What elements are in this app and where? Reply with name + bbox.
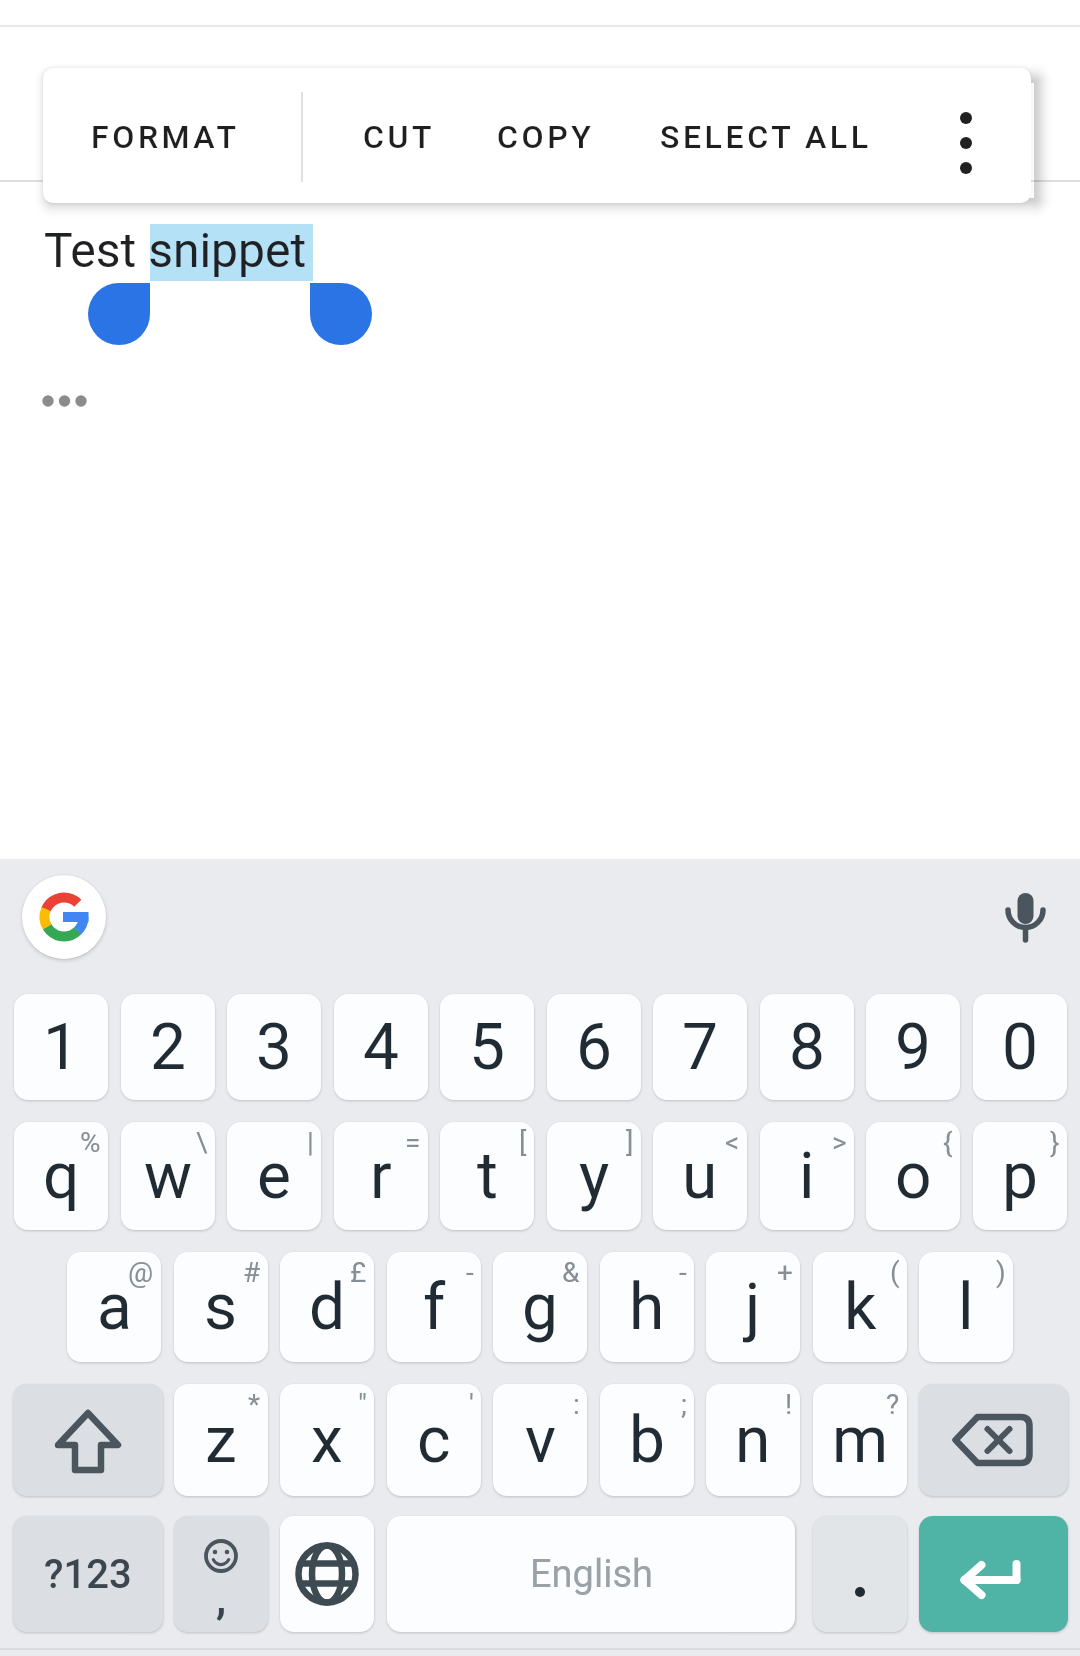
button[interactable]: SELECT ALL xyxy=(641,87,891,187)
button[interactable]: o xyxy=(866,1122,960,1230)
button[interactable]: w xyxy=(121,1122,215,1230)
button[interactable] xyxy=(280,1516,374,1632)
staticText: £ xyxy=(350,1256,367,1289)
button[interactable]: r xyxy=(334,1122,428,1230)
button[interactable]: , xyxy=(174,1516,268,1632)
button[interactable]: m xyxy=(813,1384,907,1496)
staticText: 6 xyxy=(576,1010,612,1085)
button[interactable] xyxy=(13,1384,163,1496)
button[interactable]: ?123 xyxy=(13,1516,163,1632)
staticText: English xyxy=(530,1552,653,1597)
button[interactable]: x xyxy=(280,1384,374,1496)
button[interactable] xyxy=(22,875,106,959)
button[interactable]: CUT xyxy=(339,87,459,187)
button[interactable]: f xyxy=(387,1252,481,1362)
staticText: SELECT ALL xyxy=(660,118,872,156)
staticText: 5 xyxy=(469,1010,505,1085)
button[interactable]: 6 xyxy=(547,994,641,1100)
button[interactable]: u xyxy=(653,1122,747,1230)
staticText: , xyxy=(216,1570,227,1624)
staticText: ) xyxy=(996,1256,1006,1289)
staticText: ( xyxy=(890,1256,900,1289)
staticText: h xyxy=(629,1270,665,1345)
button[interactable]: v xyxy=(493,1384,587,1496)
staticText: @ xyxy=(128,1256,154,1289)
staticText: FORMAT xyxy=(91,118,240,156)
staticText: = xyxy=(405,1126,421,1159)
button[interactable]: q xyxy=(14,1122,108,1230)
staticText: ] xyxy=(626,1126,634,1159)
staticText: > xyxy=(832,1126,847,1159)
staticText: n xyxy=(735,1403,771,1478)
staticText: < xyxy=(725,1126,740,1159)
button[interactable] xyxy=(88,283,150,345)
staticText: y xyxy=(579,1139,610,1214)
button[interactable]: 1 xyxy=(14,994,108,1100)
staticText: d xyxy=(309,1270,346,1345)
staticText: ! xyxy=(785,1388,793,1421)
staticText: k xyxy=(844,1270,877,1345)
button[interactable] xyxy=(919,1516,1068,1632)
button[interactable]: z xyxy=(174,1384,268,1496)
staticText: 2 xyxy=(150,1010,186,1085)
button[interactable]: 3 xyxy=(227,994,321,1100)
button[interactable] xyxy=(919,1384,1068,1496)
staticText: CUT xyxy=(363,118,436,156)
staticText: 8 xyxy=(789,1010,825,1085)
staticText: c xyxy=(417,1403,451,1478)
staticText: q xyxy=(43,1139,80,1214)
button[interactable] xyxy=(990,880,1062,952)
staticText: & xyxy=(562,1256,580,1289)
button[interactable]: 4 xyxy=(334,994,428,1100)
staticText: s xyxy=(204,1270,238,1345)
staticText: - xyxy=(466,1256,474,1289)
staticText: " xyxy=(358,1388,367,1421)
staticText: a xyxy=(97,1270,132,1345)
staticText: } xyxy=(1050,1126,1060,1159)
button[interactable]: 8 xyxy=(760,994,854,1100)
staticText: r xyxy=(370,1139,392,1214)
button[interactable] xyxy=(310,283,372,345)
staticText: ' xyxy=(469,1388,474,1421)
button[interactable]: t xyxy=(440,1122,534,1230)
button[interactable]: 7 xyxy=(653,994,747,1100)
staticText: \ xyxy=(196,1126,208,1159)
staticText: ? xyxy=(886,1388,900,1421)
staticText: [ xyxy=(519,1126,527,1159)
button[interactable]: i xyxy=(760,1122,854,1230)
staticText: j xyxy=(745,1270,761,1345)
staticText: 1 xyxy=(43,1010,79,1085)
staticText: - xyxy=(679,1256,687,1289)
staticText: % xyxy=(80,1126,101,1159)
button[interactable]: s xyxy=(174,1252,268,1362)
button[interactable] xyxy=(813,1516,907,1632)
button[interactable]: j xyxy=(706,1252,800,1362)
button[interactable]: n xyxy=(706,1384,800,1496)
staticText: l xyxy=(958,1270,974,1345)
button[interactable]: FORMAT xyxy=(65,87,265,187)
button[interactable]: c xyxy=(387,1384,481,1496)
button[interactable]: e xyxy=(227,1122,321,1230)
button[interactable]: English xyxy=(387,1516,795,1632)
button[interactable]: b xyxy=(600,1384,694,1496)
button[interactable]: y xyxy=(547,1122,641,1230)
button[interactable]: k xyxy=(813,1252,907,1362)
staticText: : xyxy=(573,1388,580,1421)
button[interactable]: h xyxy=(600,1252,694,1362)
button[interactable]: d xyxy=(280,1252,374,1362)
staticText: # xyxy=(243,1256,261,1289)
button[interactable]: a xyxy=(67,1252,161,1362)
staticText: { xyxy=(943,1126,953,1159)
button[interactable] xyxy=(926,92,1006,192)
staticText: t xyxy=(477,1139,498,1214)
button[interactable]: p xyxy=(973,1122,1067,1230)
button[interactable]: 9 xyxy=(866,994,960,1100)
button[interactable]: 0 xyxy=(973,994,1067,1100)
staticText: 4 xyxy=(363,1010,399,1085)
staticText: * xyxy=(248,1388,261,1421)
button[interactable]: 2 xyxy=(121,994,215,1100)
button[interactable]: g xyxy=(493,1252,587,1362)
button[interactable]: 5 xyxy=(440,994,534,1100)
button[interactable]: l xyxy=(919,1252,1013,1362)
button[interactable]: COPY xyxy=(476,87,616,187)
